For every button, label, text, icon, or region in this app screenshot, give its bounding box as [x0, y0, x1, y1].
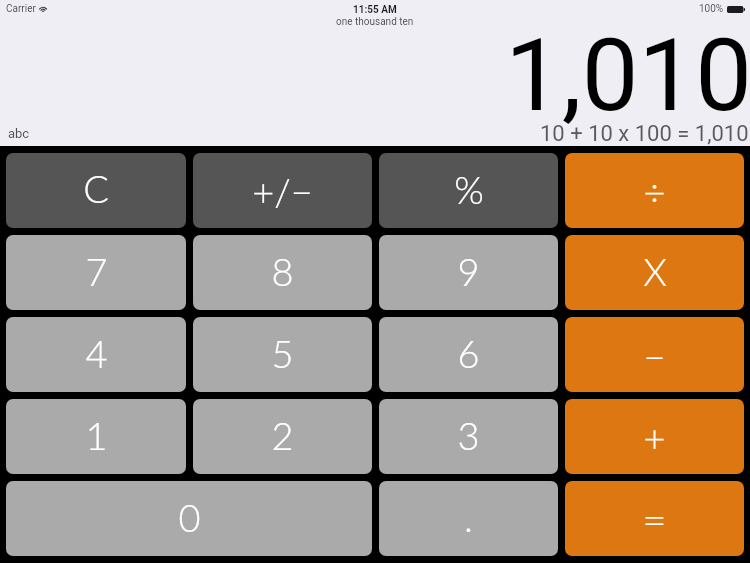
staticText: abc — [8, 126, 30, 141]
staticText: 5 — [271, 330, 294, 376]
staticText: 8 — [271, 248, 294, 294]
staticText: 7 — [85, 248, 108, 294]
staticText: Carrier — [6, 3, 36, 15]
staticText: X — [643, 248, 667, 294]
staticText: 9 — [457, 248, 480, 294]
button[interactable]: 9 — [379, 235, 558, 310]
button[interactable]: Multiply — [565, 235, 744, 310]
button[interactable]: 7 — [6, 235, 186, 310]
button[interactable]: % — [379, 153, 558, 228]
button[interactable]: C — [6, 153, 186, 228]
button[interactable]: Plus — [565, 399, 744, 474]
staticText: 1 — [85, 412, 108, 458]
staticText: 1,010 — [505, 16, 750, 134]
staticText: C — [83, 165, 109, 211]
button[interactable]: abc — [4, 124, 34, 143]
staticText: one thousand ten — [336, 16, 414, 28]
staticText: 10 + 10 x 100 = 1,010 — [540, 121, 749, 147]
staticText: + — [643, 414, 666, 460]
staticText: 6 — [457, 330, 480, 376]
staticText: 3 — [457, 412, 480, 458]
button[interactable]: 2 — [193, 399, 372, 474]
staticText: 2 — [271, 412, 294, 458]
button[interactable]: 1 — [6, 399, 186, 474]
staticText: 11:55 AM — [353, 4, 397, 16]
staticText: +/− — [252, 168, 313, 214]
staticText: − — [643, 333, 666, 379]
button[interactable]: Equals — [565, 481, 744, 556]
staticText: 4 — [85, 330, 108, 376]
staticText: = — [642, 494, 667, 544]
button[interactable]: . — [379, 481, 558, 556]
button[interactable]: +/− — [193, 153, 372, 228]
staticText: 100% — [699, 3, 724, 15]
button[interactable]: 0 — [6, 481, 372, 556]
staticText: % — [454, 166, 484, 212]
staticText: . — [464, 494, 473, 540]
button[interactable]: Divide — [565, 153, 744, 228]
staticText: 0 — [178, 494, 201, 540]
button[interactable]: 8 — [193, 235, 372, 310]
button[interactable]: 3 — [379, 399, 558, 474]
button[interactable]: Minus — [565, 317, 744, 392]
button[interactable]: 6 — [379, 317, 558, 392]
button[interactable]: 4 — [6, 317, 186, 392]
staticText: ÷ — [643, 168, 666, 214]
button[interactable]: 5 — [193, 317, 372, 392]
